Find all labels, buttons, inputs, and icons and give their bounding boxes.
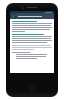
button[interactable]: Navigate up [10, 13, 54, 19]
button[interactable]: Navigate up [10, 13, 16, 19]
